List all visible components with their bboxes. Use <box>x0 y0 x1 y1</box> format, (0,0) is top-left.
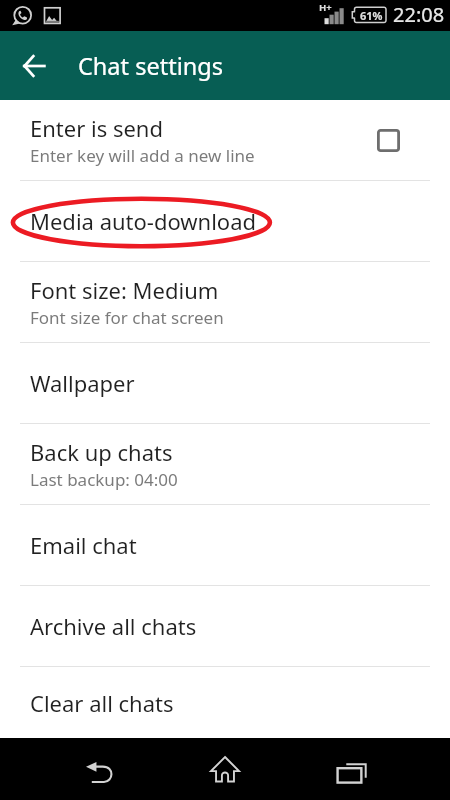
staticText: 22:08 <box>393 1 445 28</box>
staticText: Font size for chat screen <box>30 306 224 329</box>
staticText: Email chat <box>30 530 137 560</box>
button[interactable]: Media auto-download <box>0 181 450 261</box>
staticText: Media auto-download <box>30 206 257 236</box>
staticText: Clear all chats <box>30 688 174 718</box>
staticText: Archive all chats <box>30 611 197 641</box>
staticText: H+ <box>319 1 332 14</box>
button[interactable]: Wallpaper <box>0 343 450 423</box>
staticText: Wallpaper <box>30 368 135 398</box>
staticText: Last backup: 04:00 <box>30 468 178 491</box>
button[interactable]: Back <box>0 31 68 100</box>
staticText: Enter key will add a new line <box>30 144 255 167</box>
button[interactable]: Clear all chats <box>0 667 450 738</box>
staticText: Font size: Medium <box>30 275 219 305</box>
button[interactable]: Enter is send <box>0 100 450 180</box>
staticText: 61% <box>360 8 383 23</box>
button[interactable]: Archive all chats <box>0 586 450 666</box>
staticText: Enter is send <box>30 113 163 143</box>
button[interactable]: Email chat <box>0 505 450 585</box>
button[interactable]: Home <box>195 738 255 800</box>
button[interactable]: Recent apps <box>321 738 381 800</box>
button[interactable]: Enter is send checkbox <box>366 118 410 162</box>
button[interactable]: Back <box>70 738 130 800</box>
button[interactable]: Back up chats <box>0 424 450 504</box>
staticText: Chat settings <box>78 50 223 82</box>
staticText: Back up chats <box>30 437 173 467</box>
button[interactable]: Font size: Medium <box>0 262 450 342</box>
